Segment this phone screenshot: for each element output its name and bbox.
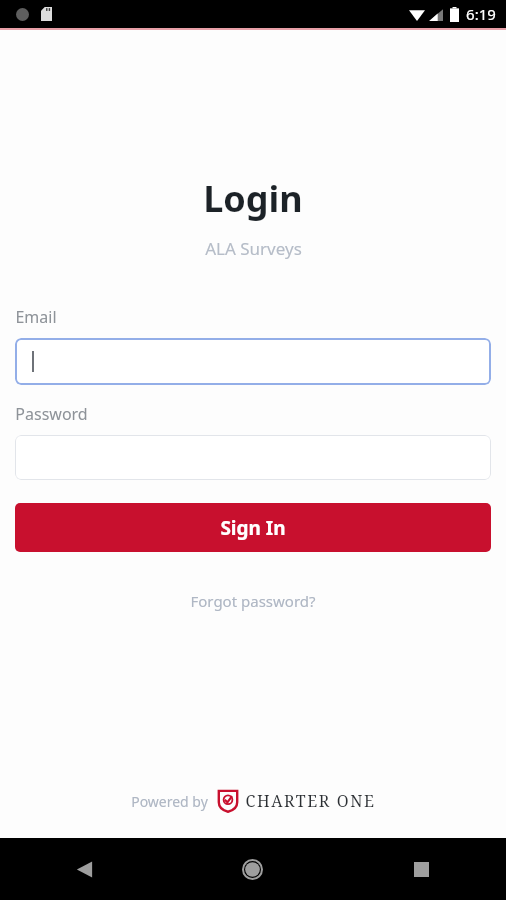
staticText: ALA Surveys [205, 237, 302, 260]
button[interactable]: Recent apps [337, 838, 506, 900]
button[interactable]: Back [0, 838, 168, 900]
staticText: CHARTER ONE [245, 790, 376, 812]
staticText: 6:19 [466, 4, 496, 24]
button[interactable]: Forgot password? [180, 586, 326, 616]
button[interactable]: Email input field [15, 338, 491, 385]
staticText: Password [15, 403, 88, 425]
button[interactable]: Home [168, 838, 337, 900]
staticText: Login [203, 174, 303, 223]
staticText: Email [15, 306, 57, 328]
staticText: Sign In [220, 515, 286, 541]
button[interactable]: Password input field [15, 435, 491, 480]
staticText: Powered by [131, 792, 208, 811]
button[interactable]: Sign In [15, 503, 491, 552]
staticText: Forgot password? [190, 591, 316, 611]
